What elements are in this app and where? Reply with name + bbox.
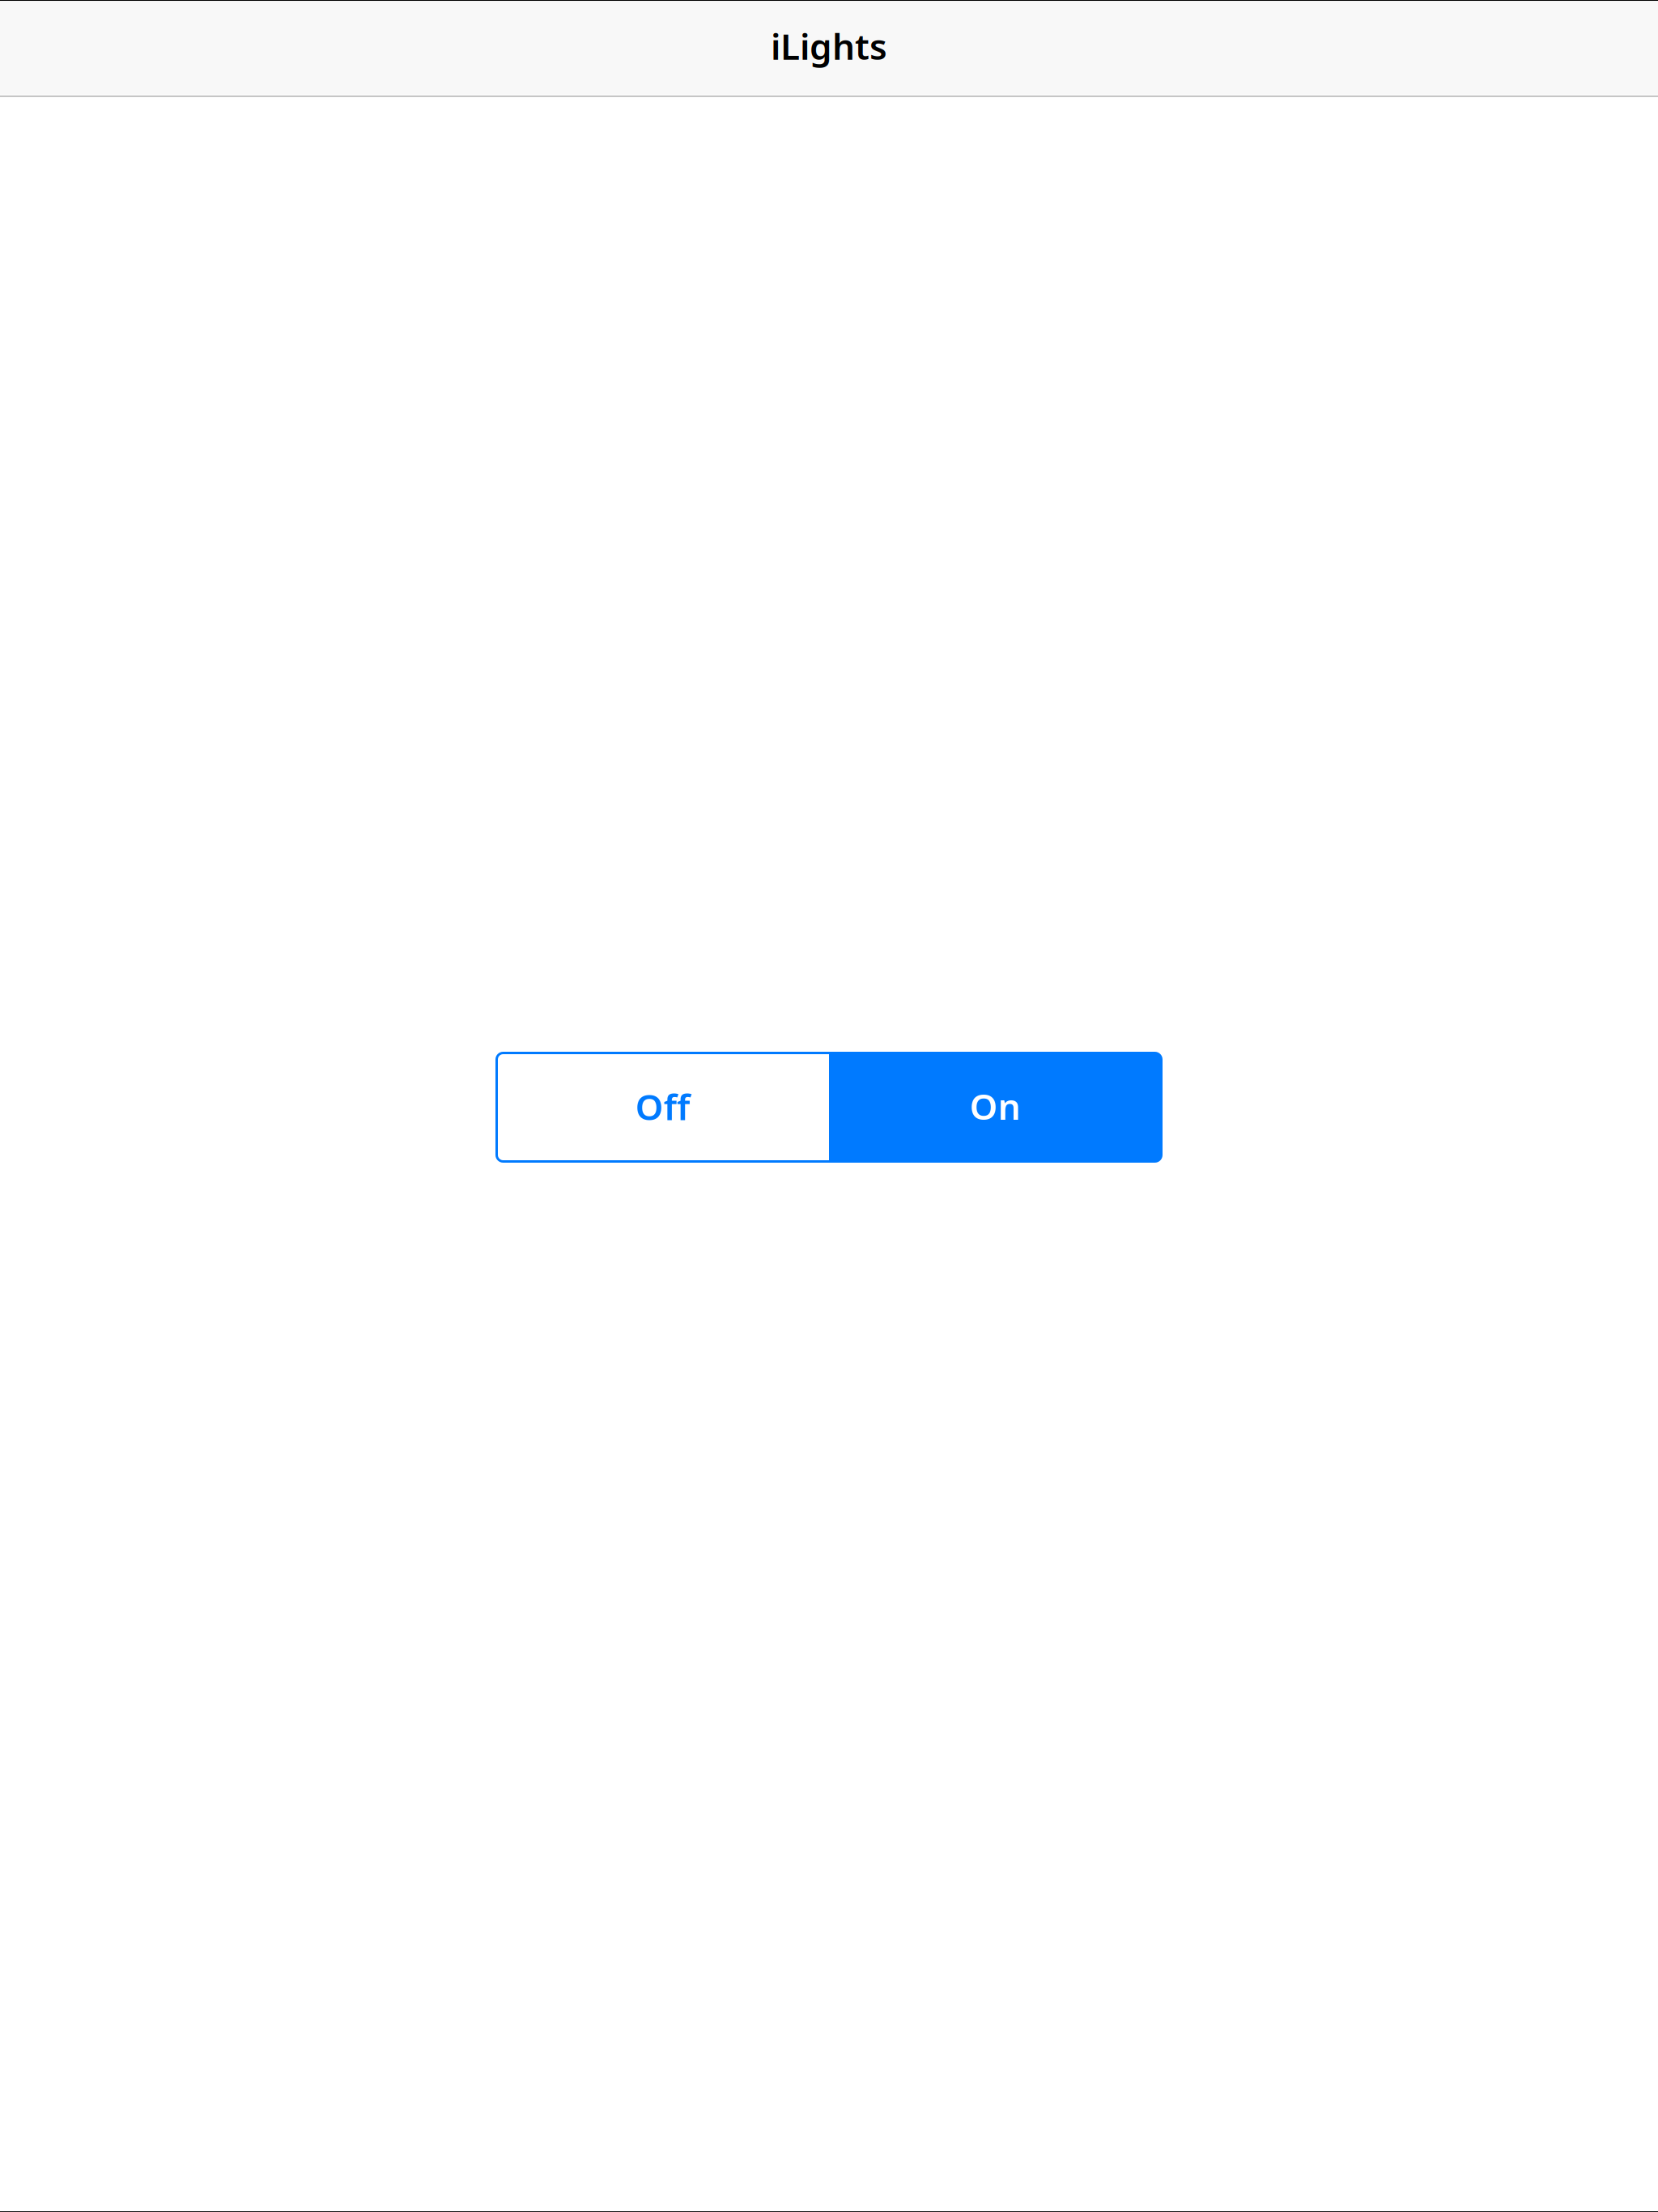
button[interactable]: On bbox=[829, 1053, 1161, 1161]
staticText: On bbox=[970, 1082, 1021, 1130]
staticText: Off bbox=[635, 1083, 690, 1130]
staticText: iLights bbox=[771, 22, 887, 70]
button[interactable]: Off bbox=[497, 1053, 829, 1161]
